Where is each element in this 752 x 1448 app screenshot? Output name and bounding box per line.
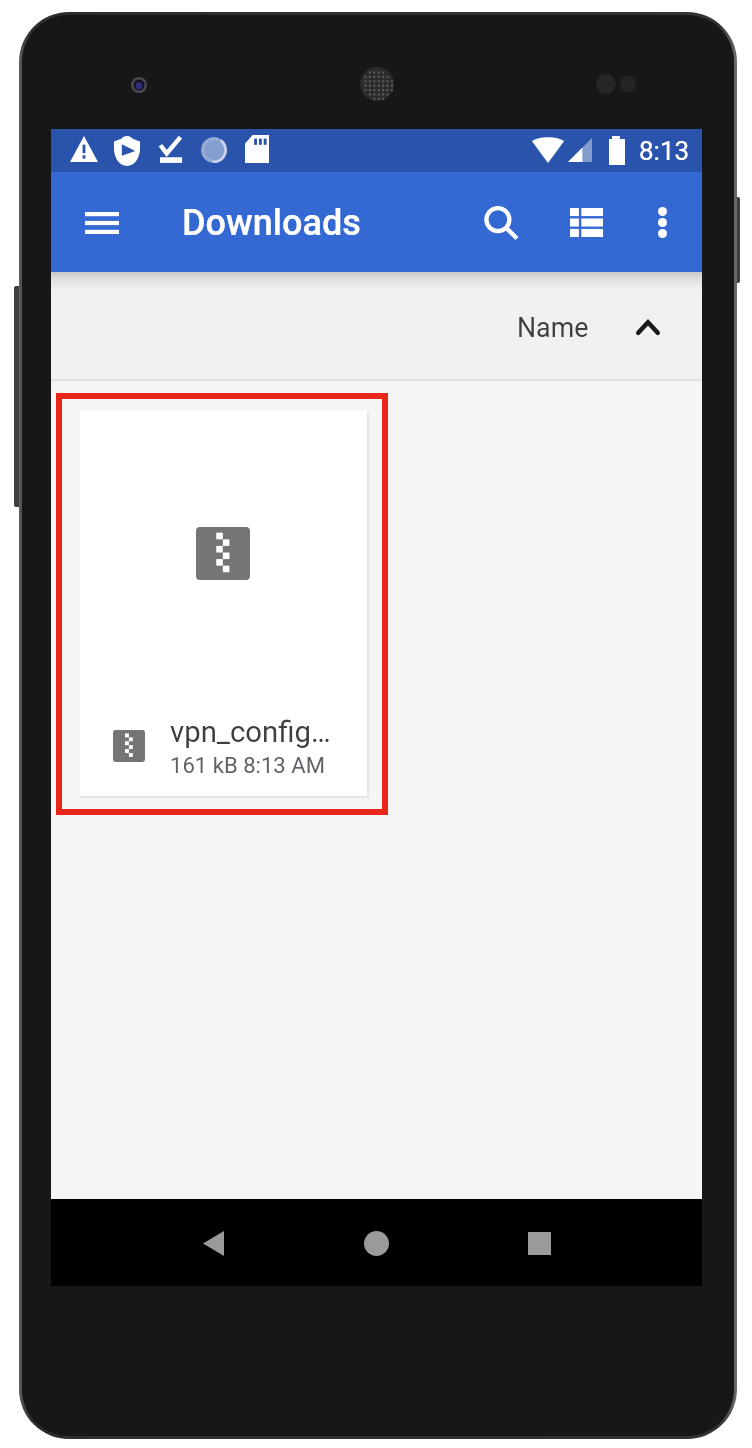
button[interactable]: Open navigation drawer bbox=[73, 194, 131, 252]
staticText: 161 kB 8:13 AM bbox=[170, 752, 325, 778]
staticText: Downloads bbox=[182, 202, 361, 244]
button[interactable]: Toggle list view bbox=[557, 193, 615, 251]
staticText: 8:13 bbox=[639, 136, 690, 166]
staticText: vpn_config… bbox=[170, 715, 331, 749]
button[interactable]: More options bbox=[633, 193, 691, 251]
button[interactable]: Home bbox=[352, 1219, 400, 1267]
button[interactable]: Back bbox=[189, 1219, 237, 1267]
button[interactable]: Search bbox=[473, 195, 531, 253]
button[interactable]: Name bbox=[517, 295, 674, 359]
button[interactable]: Recent apps bbox=[515, 1219, 563, 1267]
staticText: Name bbox=[517, 312, 589, 343]
button[interactable]: vpn_config… bbox=[80, 411, 367, 796]
